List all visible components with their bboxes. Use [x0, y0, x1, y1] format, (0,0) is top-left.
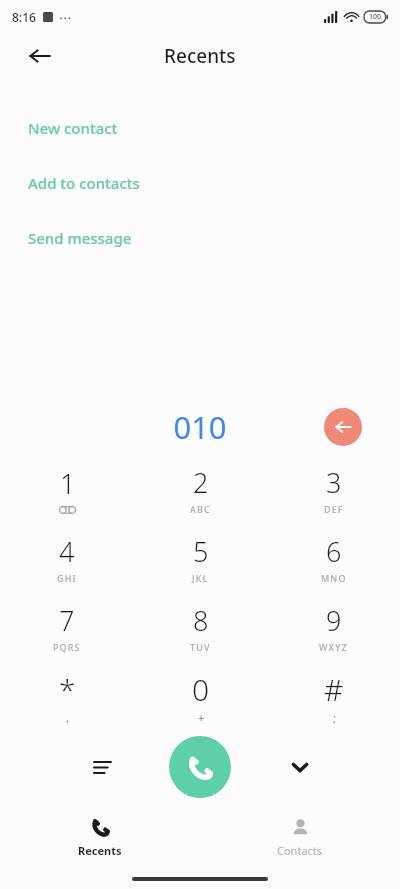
- staticText: Recents: [78, 843, 122, 858]
- button[interactable]: 0: [134, 662, 267, 731]
- staticText: ;: [333, 710, 336, 725]
- staticText: 5: [193, 533, 209, 570]
- button[interactable]: Dial options: [80, 745, 124, 789]
- button[interactable]: Hide keypad: [278, 745, 322, 789]
- staticText: WXYZ: [319, 641, 348, 653]
- staticText: TUV: [190, 641, 211, 653]
- staticText: DEF: [324, 503, 344, 515]
- staticText: 1: [60, 465, 76, 502]
- staticText: 6: [326, 533, 342, 570]
- staticText: New contact: [28, 118, 118, 138]
- button[interactable]: Send message: [0, 216, 400, 259]
- staticText: PQRS: [53, 641, 81, 653]
- button[interactable]: Back: [16, 32, 64, 80]
- button[interactable]: Recents: [0, 808, 200, 866]
- staticText: JKL: [192, 572, 209, 584]
- button[interactable]: 7: [0, 593, 134, 662]
- staticText: 0: [192, 669, 210, 710]
- staticText: Recents: [164, 43, 236, 69]
- staticText: 9: [326, 602, 342, 639]
- staticText: MNO: [321, 572, 347, 584]
- staticText: GHI: [57, 572, 77, 584]
- button[interactable]: #: [267, 662, 400, 731]
- button[interactable]: 4: [0, 524, 134, 593]
- staticText: 010: [173, 406, 227, 448]
- button[interactable]: 6: [267, 524, 400, 593]
- staticText: 8: [193, 602, 209, 639]
- button[interactable]: 9: [267, 593, 400, 662]
- staticText: +: [198, 710, 205, 725]
- staticText: Send message: [28, 228, 132, 248]
- staticText: ,: [66, 710, 69, 725]
- staticText: Contacts: [277, 843, 323, 858]
- button[interactable]: Call: [169, 736, 231, 798]
- button[interactable]: Backspace: [324, 408, 362, 446]
- button[interactable]: Contacts: [200, 808, 400, 866]
- button[interactable]: 8: [134, 593, 267, 662]
- staticText: 2: [193, 464, 209, 501]
- staticText: 3: [326, 464, 342, 501]
- button[interactable]: New contact: [0, 106, 400, 149]
- staticText: Add to contacts: [28, 173, 140, 193]
- button[interactable]: 2: [134, 455, 267, 524]
- button[interactable]: 5: [134, 524, 267, 593]
- button[interactable]: Add to contacts: [0, 161, 400, 204]
- staticText: 7: [59, 602, 75, 639]
- button[interactable]: 3: [267, 455, 400, 524]
- staticText: *: [59, 669, 76, 710]
- staticText: 4: [59, 533, 75, 570]
- button[interactable]: *: [0, 662, 134, 731]
- staticText: #: [324, 669, 344, 710]
- staticText: ABC: [190, 503, 211, 515]
- button[interactable]: 1: [0, 455, 134, 524]
- staticText: 8:16: [12, 9, 36, 25]
- staticText: 100: [369, 12, 382, 22]
